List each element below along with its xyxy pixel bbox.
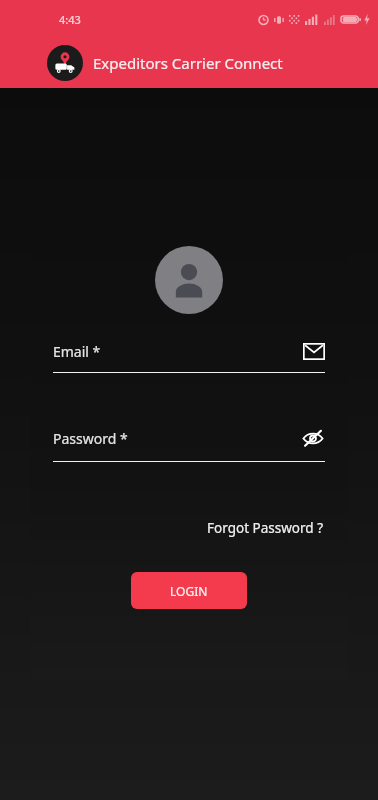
button[interactable]: Toggle password visibility: [53, 426, 325, 462]
button[interactable]: Email: [53, 342, 325, 373]
staticText: Forgot Password ?: [207, 519, 323, 537]
button[interactable]: Forgot Password ?: [205, 517, 325, 539]
staticText: LOGIN: [170, 583, 208, 599]
button[interactable]: LOGIN: [131, 572, 247, 609]
staticText: 4:43: [59, 12, 81, 27]
button[interactable]: App logo: [47, 45, 83, 81]
staticText: Expeditors Carrier Connect: [93, 53, 283, 73]
staticText: Password *: [53, 429, 128, 448]
staticText: Email *: [53, 342, 101, 361]
